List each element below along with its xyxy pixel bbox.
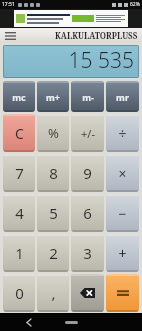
button[interactable]: % — [37, 114, 69, 152]
button[interactable]: m- — [71, 81, 104, 112]
button[interactable]: + — [106, 234, 139, 272]
button[interactable]: Home — [65, 321, 78, 324]
staticText: − — [118, 204, 127, 223]
button[interactable]: − — [106, 194, 139, 232]
button[interactable]: 5 — [37, 194, 69, 232]
staticText: C — [15, 124, 24, 143]
button[interactable]: 9 — [71, 154, 104, 192]
button[interactable]: × — [106, 154, 139, 192]
staticText: 8 — [49, 163, 58, 183]
staticText: m- — [82, 91, 94, 103]
button[interactable]: 6 — [71, 194, 104, 232]
staticText: KALKULATORPLUSS — [55, 30, 138, 41]
staticText: 7 — [15, 163, 24, 183]
button[interactable]: 7 — [3, 154, 35, 192]
staticText: + — [118, 244, 127, 263]
staticText: ÷ — [118, 124, 127, 143]
staticText: 3 — [83, 243, 92, 263]
staticText: 4 — [15, 203, 24, 223]
staticText: , — [51, 283, 56, 303]
staticText: 62% — [130, 1, 140, 8]
button[interactable]: 0 — [3, 274, 35, 312]
staticText: 5 — [49, 203, 58, 223]
button[interactable]: Backspace — [71, 274, 104, 312]
staticText: 9 — [83, 163, 92, 183]
staticText: % — [48, 124, 59, 142]
staticText: 2 — [49, 243, 58, 263]
button[interactable]: mc — [3, 81, 35, 112]
button[interactable]: ÷ — [106, 114, 139, 152]
button[interactable]: 2 — [37, 234, 69, 272]
staticText: 17:51 — [2, 1, 15, 8]
button[interactable]: 3 — [71, 234, 104, 272]
button[interactable]: m+ — [37, 81, 69, 112]
button[interactable]: mr — [106, 81, 139, 112]
button[interactable]: 1 — [3, 234, 35, 272]
staticText: m+ — [46, 91, 60, 103]
staticText: +/- — [81, 126, 95, 141]
button[interactable]: Menu — [3, 30, 17, 42]
button[interactable]: 4 — [3, 194, 35, 232]
button[interactable]: C — [3, 114, 35, 152]
staticText: 1 — [15, 243, 24, 263]
button[interactable]: +/- — [71, 114, 104, 152]
button[interactable]: , — [37, 274, 69, 312]
staticText: mc — [12, 91, 26, 103]
staticText: × — [118, 164, 127, 183]
button[interactable]: Equals — [106, 274, 139, 312]
staticText: 6 — [83, 203, 92, 223]
staticText: 0 — [15, 283, 24, 303]
staticText: 15 535 — [68, 46, 134, 75]
button[interactable]: 8 — [37, 154, 69, 192]
button[interactable]: Back — [22, 315, 36, 329]
staticText: mr — [116, 91, 129, 103]
